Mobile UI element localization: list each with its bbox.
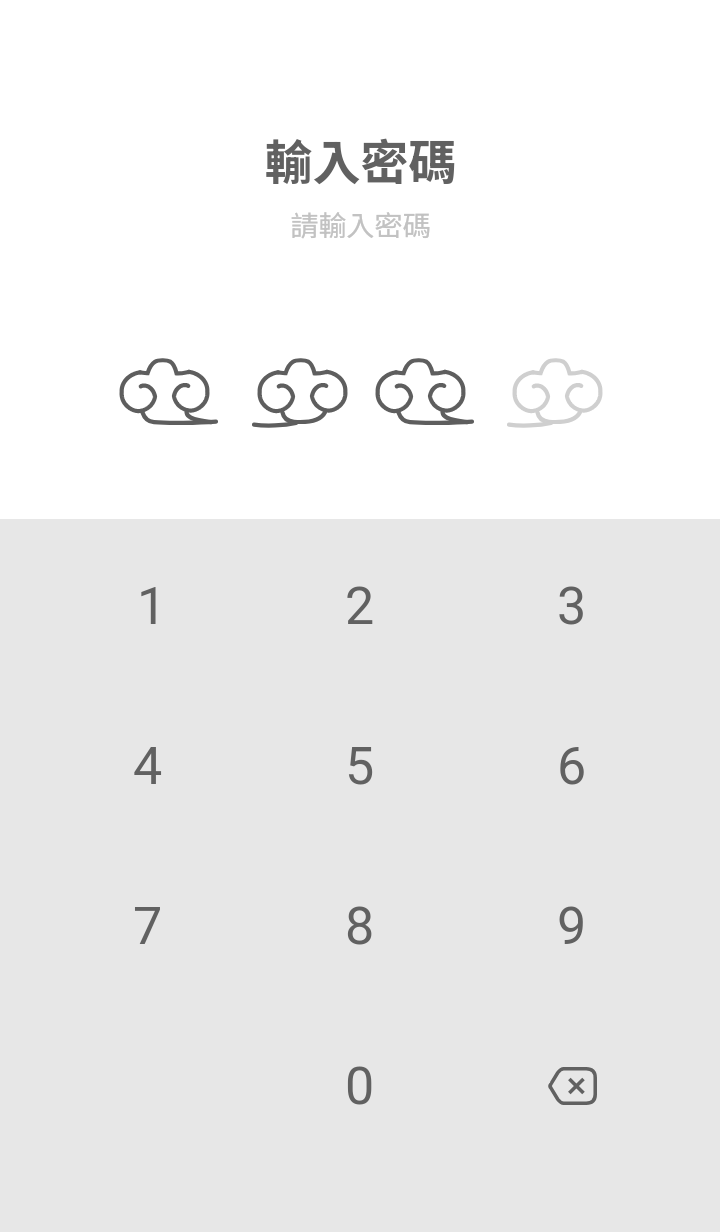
staticText: 0 (345, 1056, 375, 1117)
button[interactable]: 9 (466, 846, 678, 1006)
staticText: 9 (557, 896, 587, 957)
button[interactable]: 8 (254, 846, 466, 1006)
staticText: 4 (133, 736, 163, 797)
staticText: 請輸入密碼 (290, 204, 431, 245)
button[interactable]: 3 (466, 526, 678, 686)
staticText: 輸入密碼 (264, 124, 457, 194)
other: Backspace (524, 1038, 620, 1134)
staticText: 3 (557, 576, 587, 637)
button[interactable]: 6 (466, 686, 678, 846)
staticText: 1 (137, 576, 167, 637)
button[interactable]: 1 (42, 526, 254, 686)
button[interactable]: Backspace (466, 1006, 678, 1166)
button[interactable]: 7 (42, 846, 254, 1006)
staticText: 7 (133, 896, 163, 957)
staticText: 6 (557, 736, 587, 797)
button[interactable]: 4 (42, 686, 254, 846)
button[interactable]: 0 (254, 1006, 466, 1166)
button[interactable]: 5 (254, 686, 466, 846)
staticText: 8 (345, 896, 375, 957)
button[interactable]: 2 (254, 526, 466, 686)
staticText: 5 (345, 736, 375, 797)
staticText: 2 (345, 576, 375, 637)
